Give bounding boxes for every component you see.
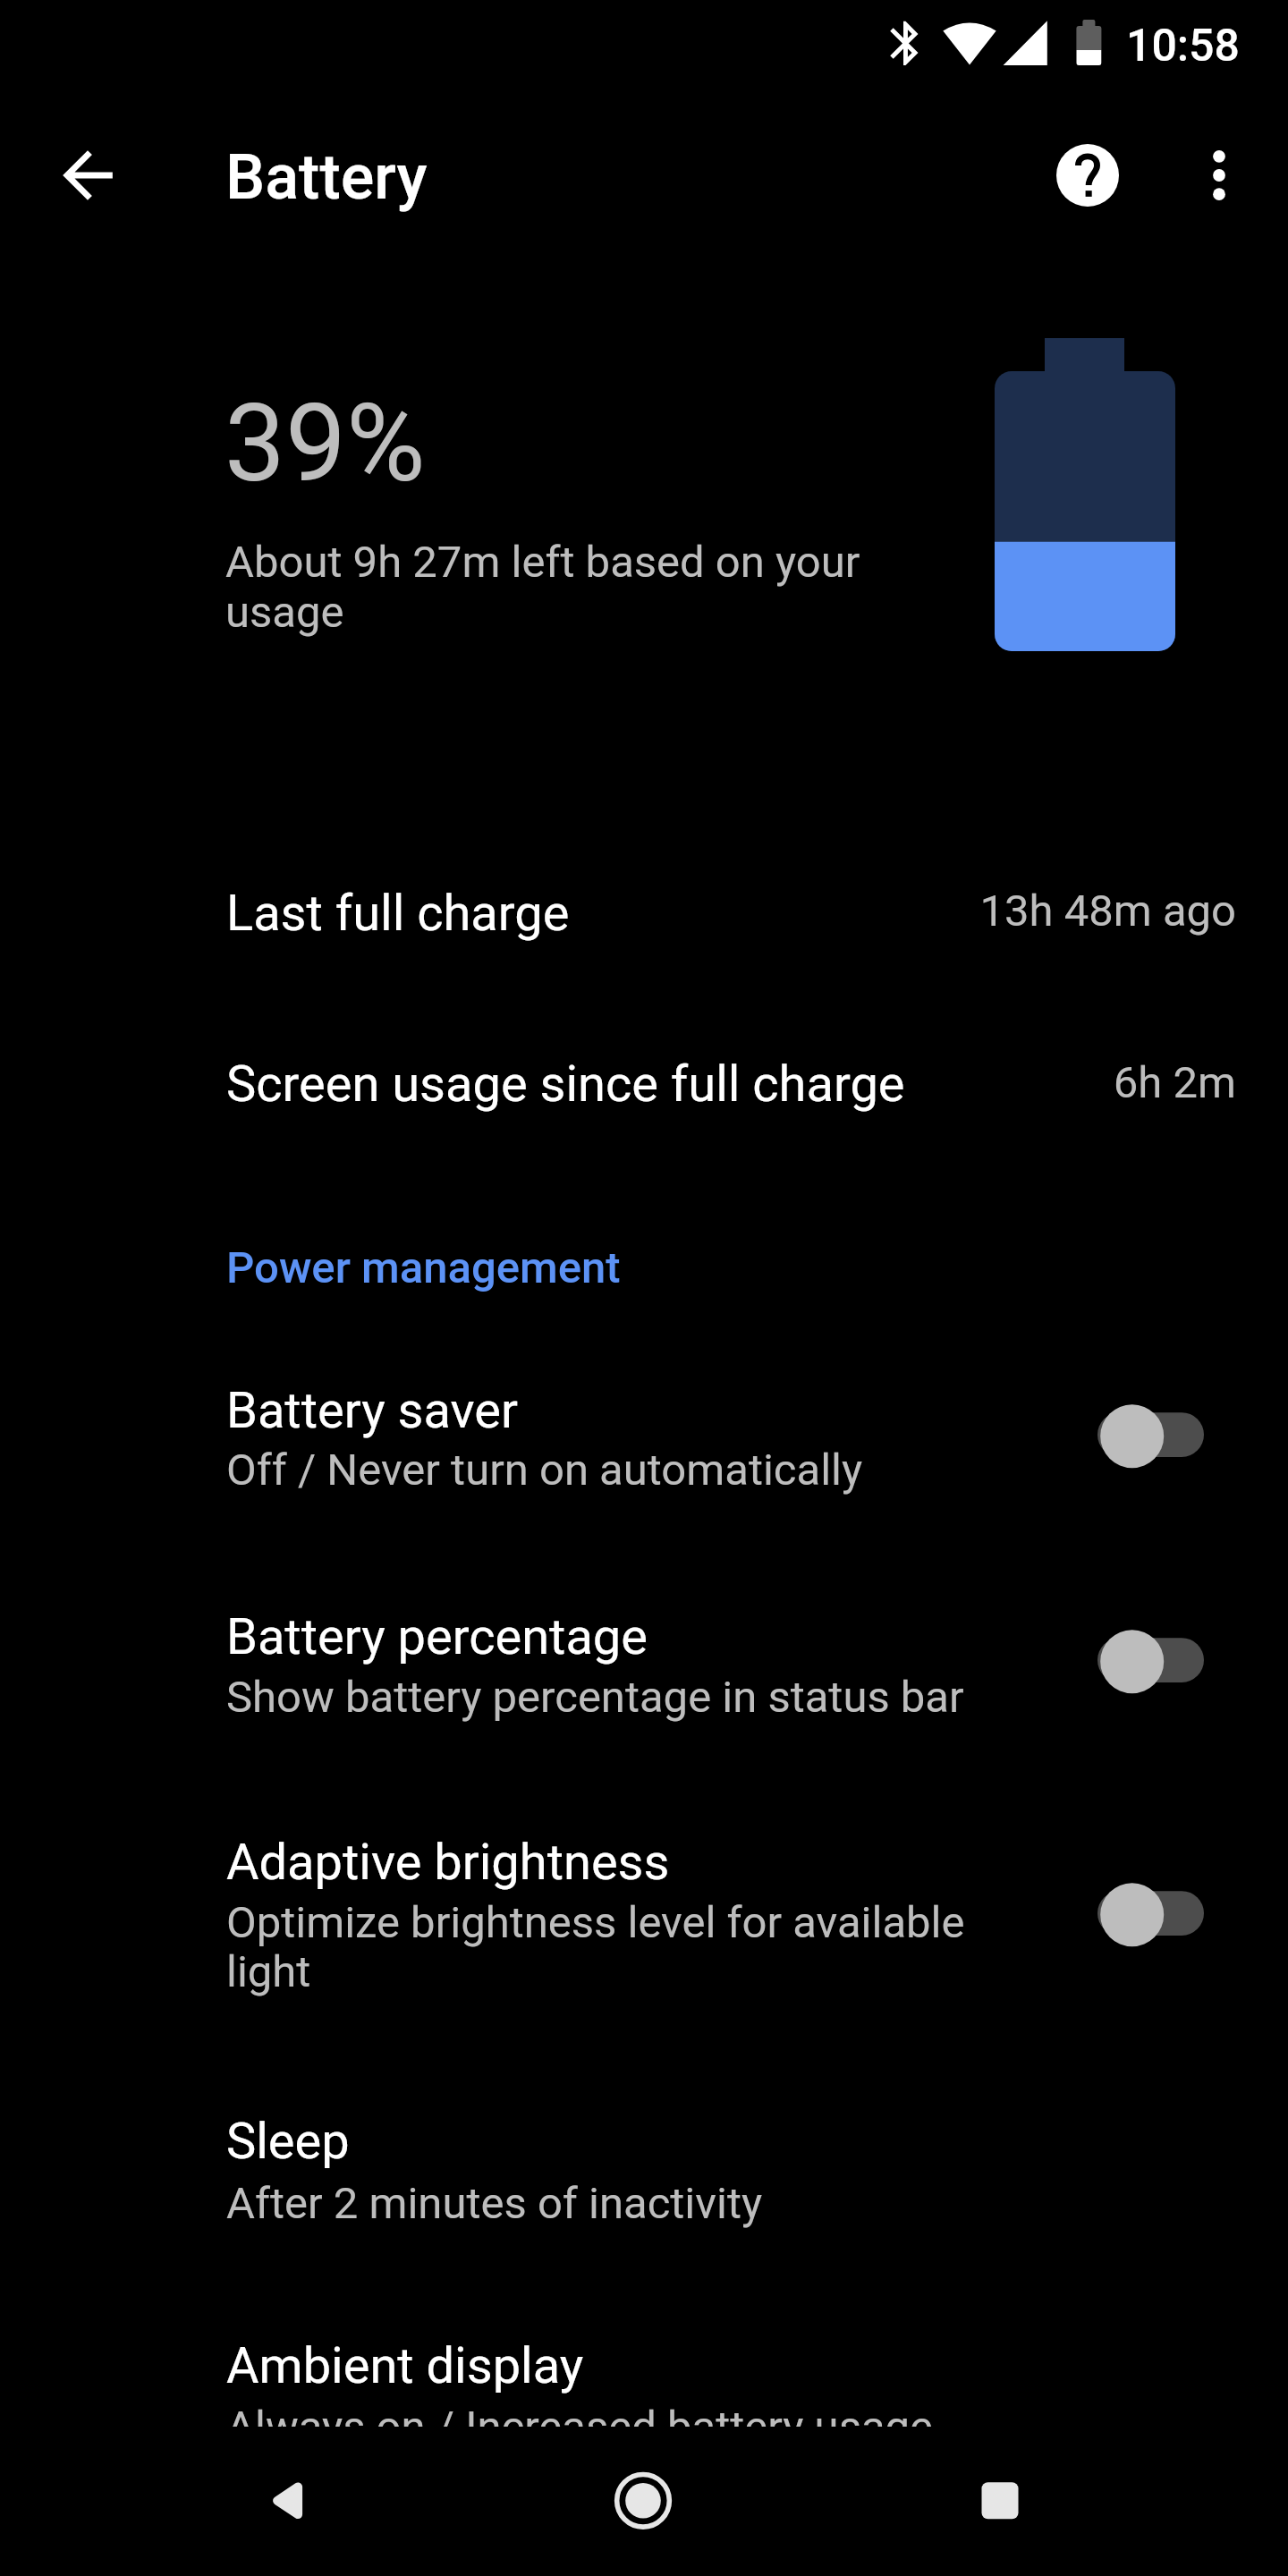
staticText: Optimize brightness level for available …	[226, 1897, 987, 1997]
staticText: Battery	[225, 140, 1288, 214]
staticText: 13h 48m ago	[805, 885, 1236, 936]
staticText: Battery percentage	[226, 1607, 1288, 1666]
staticText: Ambient display	[226, 2336, 1288, 2395]
staticText: Show battery percentage in status bar	[226, 1672, 1004, 1723]
button[interactable]: Battery saver switch, off	[1061, 1360, 1225, 1504]
button[interactable]: More options	[1144, 100, 1288, 250]
button[interactable]: Back	[211, 2427, 361, 2576]
button[interactable]: Recent apps	[925, 2427, 1075, 2576]
button[interactable]: Last full charge	[0, 829, 1288, 1001]
button[interactable]: Adaptive brightness switch, off	[1061, 1839, 1225, 1982]
button[interactable]: Home	[568, 2427, 718, 2576]
staticText: Last full charge	[226, 884, 1288, 943]
staticText: Always on / Increased battery usage	[226, 2402, 1288, 2453]
button[interactable]: Ambient display	[0, 2292, 1288, 2497]
staticText: About 9h 27m left based on your usage	[225, 537, 878, 638]
button[interactable]: Battery saver	[0, 1337, 1288, 1543]
button[interactable]: Battery percentage switch, off	[1061, 1586, 1225, 1729]
staticText: After 2 minutes of inactivity	[226, 2178, 1288, 2229]
button[interactable]: Screen usage since full charge	[0, 1001, 1288, 1173]
button[interactable]: Adaptive brightness	[0, 1789, 1288, 1995]
button[interactable]: Battery percentage	[0, 1563, 1288, 1769]
staticText: Off / Never turn on automatically	[226, 1445, 1004, 1496]
staticText: Adaptive brightness	[226, 1833, 1288, 1892]
button[interactable]: Navigate up	[13, 100, 163, 250]
button[interactable]: Sleep	[0, 2068, 1288, 2274]
staticText: Power management	[226, 1242, 1288, 1293]
staticText: Battery saver	[226, 1381, 1288, 1440]
button[interactable]: Help	[1013, 100, 1163, 250]
staticText: 6h 2m	[805, 1057, 1236, 1108]
staticText: 10:58	[1126, 20, 1288, 72]
staticText: Sleep	[226, 2112, 1288, 2171]
staticText: Screen usage since full charge	[226, 1055, 1288, 1114]
staticText: 39%	[225, 380, 1288, 507]
